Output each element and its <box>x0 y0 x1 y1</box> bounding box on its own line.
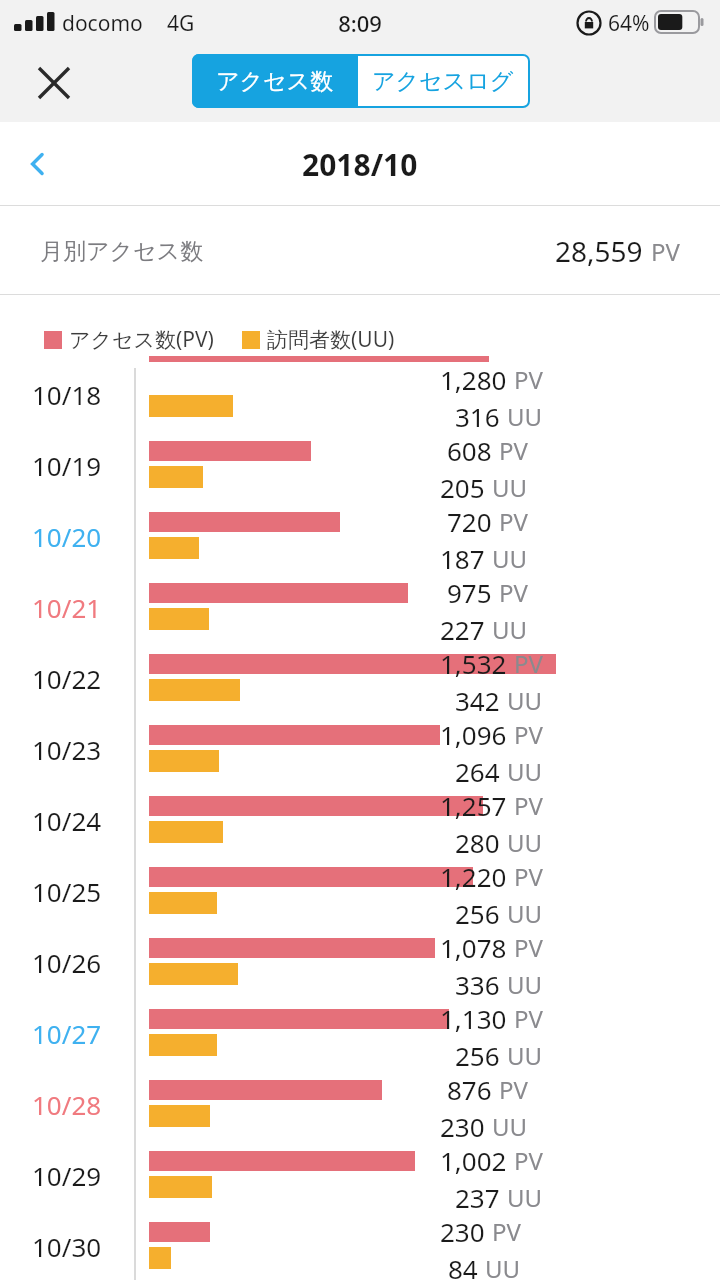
button[interactable] <box>0 358 720 429</box>
staticText: 10/22 <box>32 661 102 696</box>
staticText: 1,078 <box>440 930 507 965</box>
button[interactable] <box>0 429 720 500</box>
staticText: アクセス数 <box>216 67 334 96</box>
staticText: 256 <box>455 896 500 931</box>
staticText: 1,096 <box>440 717 507 752</box>
staticText: PV <box>514 789 543 822</box>
staticText: アクセスログ <box>372 67 514 96</box>
staticText: UU <box>492 613 528 646</box>
button[interactable]: Close <box>18 47 90 119</box>
staticText: UU <box>492 542 528 575</box>
staticText: 720 <box>447 504 492 539</box>
staticText: docomo <box>62 9 143 38</box>
staticText: UU <box>507 897 543 930</box>
staticText: PV <box>514 860 543 893</box>
staticText: 342 <box>455 683 500 718</box>
staticText: PV <box>499 1073 528 1106</box>
staticText: 10/25 <box>32 874 102 909</box>
staticText: 10/18 <box>32 377 102 412</box>
staticText: PV <box>514 1144 543 1177</box>
staticText: PV <box>499 505 528 538</box>
staticText: 10/24 <box>32 803 102 838</box>
button[interactable] <box>0 926 720 997</box>
button[interactable] <box>0 571 720 642</box>
button[interactable]: アクセスログ <box>358 56 528 106</box>
staticText: 10/27 <box>32 1016 102 1051</box>
button[interactable]: アクセス数 <box>192 54 358 108</box>
staticText: UU <box>507 1181 543 1214</box>
button[interactable] <box>0 855 720 926</box>
staticText: 64% <box>608 9 650 38</box>
staticText: PV <box>651 235 680 268</box>
staticText: 237 <box>455 1180 500 1215</box>
staticText: 1,257 <box>440 788 507 823</box>
staticText: 1,280 <box>440 362 507 397</box>
staticText: 256 <box>455 1038 500 1073</box>
staticText: 608 <box>447 433 492 468</box>
staticText: 84 <box>448 1251 478 1280</box>
staticText: 230 <box>440 1214 485 1249</box>
button[interactable] <box>0 784 720 855</box>
staticText: PV <box>492 1215 521 1248</box>
staticText: UU <box>485 1252 521 1280</box>
staticText: PV <box>514 931 543 964</box>
staticText: PV <box>514 363 543 396</box>
staticText: 10/21 <box>32 590 102 625</box>
staticText: 1,130 <box>440 1001 507 1036</box>
staticText: PV <box>514 718 543 751</box>
staticText: 1,220 <box>440 859 507 894</box>
staticText: UU <box>492 1110 528 1143</box>
staticText: 2018/10 <box>302 144 418 185</box>
button[interactable] <box>0 1068 720 1139</box>
staticText: PV <box>499 434 528 467</box>
button[interactable] <box>0 997 720 1068</box>
staticText: 10/28 <box>32 1087 102 1122</box>
staticText: 10/20 <box>32 519 102 554</box>
staticText: PV <box>514 1002 543 1035</box>
staticText: 訪問者数(UU) <box>267 325 395 354</box>
staticText: 1,002 <box>440 1143 507 1178</box>
staticText: 月別アクセス数 <box>40 237 204 266</box>
staticText: 10/19 <box>32 448 102 483</box>
staticText: 264 <box>455 754 500 789</box>
staticText: UU <box>507 826 543 859</box>
staticText: PV <box>499 576 528 609</box>
staticText: アクセス数(PV) <box>69 325 214 354</box>
staticText: 10/29 <box>32 1158 102 1193</box>
staticText: UU <box>492 471 528 504</box>
staticText: 10/26 <box>32 945 102 980</box>
staticText: PV <box>514 647 543 680</box>
staticText: 8:09 <box>0 8 720 38</box>
staticText: 316 <box>455 399 500 434</box>
staticText: 205 <box>440 470 485 505</box>
button[interactable]: Previous month <box>0 122 76 206</box>
staticText: UU <box>507 755 543 788</box>
staticText: 336 <box>455 967 500 1002</box>
button[interactable] <box>0 713 720 784</box>
staticText: 187 <box>440 541 485 576</box>
button[interactable] <box>0 642 720 713</box>
button[interactable] <box>0 1210 720 1280</box>
staticText: 975 <box>447 575 492 610</box>
staticText: 10/30 <box>32 1229 102 1264</box>
staticText: UU <box>507 968 543 1001</box>
staticText: 876 <box>447 1072 492 1107</box>
staticText: 1,532 <box>440 646 507 681</box>
staticText: 28,559 <box>555 232 643 270</box>
button[interactable] <box>0 1139 720 1210</box>
button[interactable] <box>0 500 720 571</box>
staticText: 280 <box>455 825 500 860</box>
staticText: 230 <box>440 1109 485 1144</box>
staticText: UU <box>507 684 543 717</box>
staticText: 10/23 <box>32 732 102 767</box>
staticText: 4G <box>167 9 195 38</box>
staticText: UU <box>507 400 543 433</box>
staticText: UU <box>507 1039 543 1072</box>
staticText: 227 <box>440 612 485 647</box>
